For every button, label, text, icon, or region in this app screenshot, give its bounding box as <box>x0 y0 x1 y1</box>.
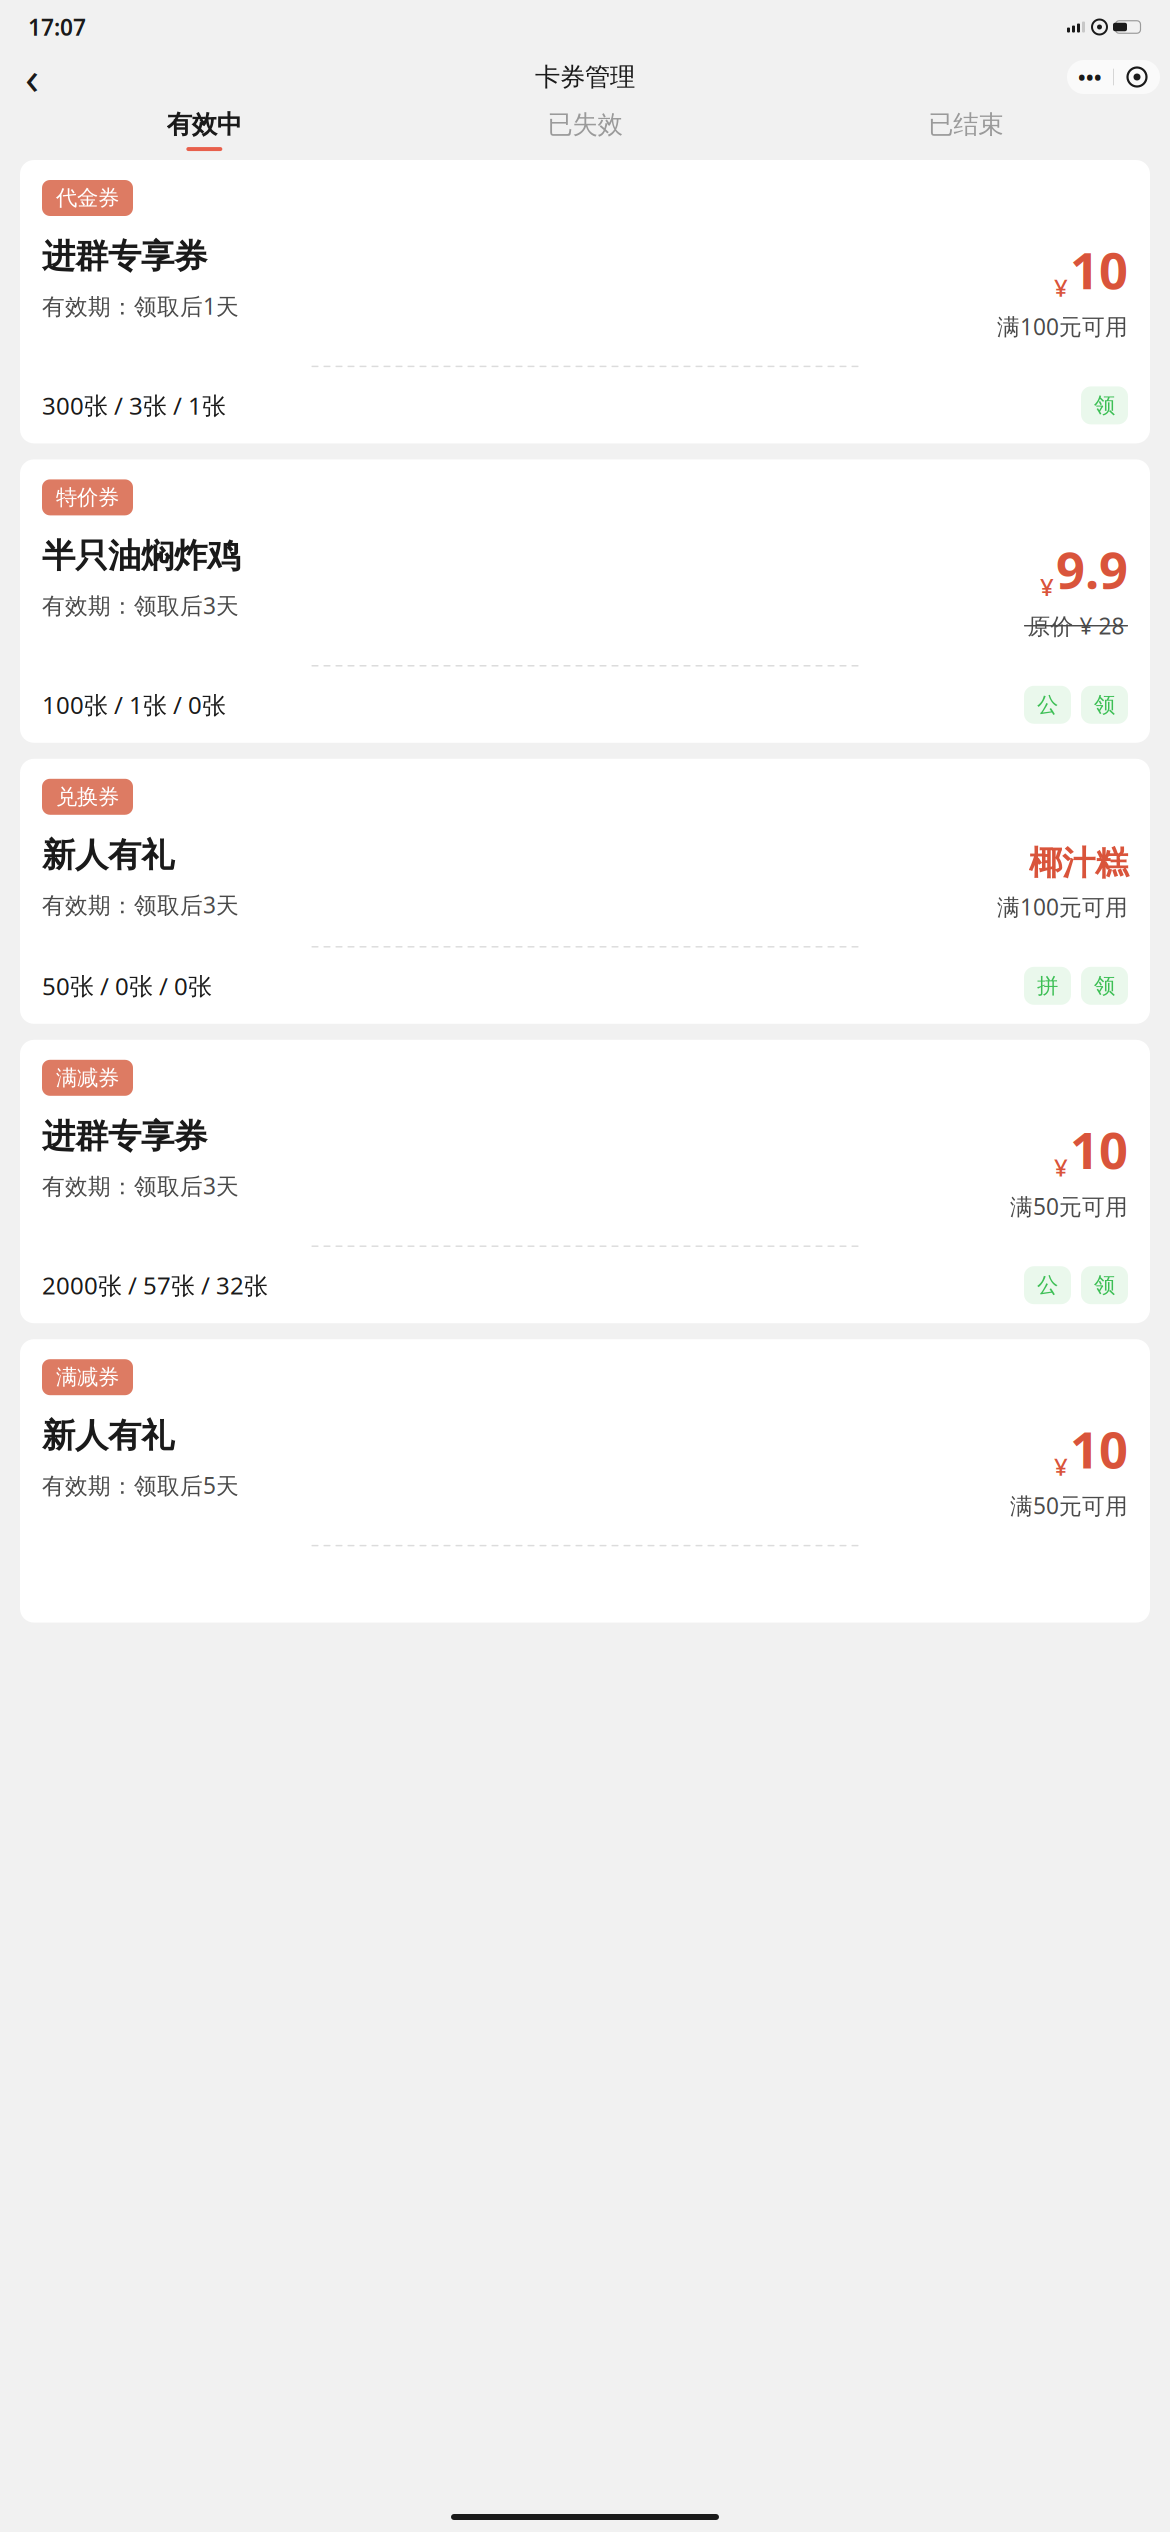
staticText: 领 <box>1094 692 1115 718</box>
staticText: 进群专享券 <box>42 1116 207 1157</box>
staticText: 100张 / 1张 / 0张 <box>42 689 226 721</box>
staticText: 10 <box>1070 1116 1128 1183</box>
staticText: 有效期：领取后5天 <box>42 1470 239 1500</box>
button[interactable]: 有效中 <box>14 109 395 151</box>
staticText: 公 <box>1037 1272 1058 1298</box>
button[interactable]: 满减券 <box>20 1040 1150 1323</box>
staticText: 2000张 / 57张 / 32张 <box>42 1269 268 1301</box>
button[interactable]: 领 <box>1081 686 1128 724</box>
button[interactable]: 拼 <box>1024 967 1071 1005</box>
staticText: 满减券 <box>56 1065 119 1091</box>
staticText: 满50元可用 <box>1010 1490 1128 1521</box>
button[interactable]: 已失效 <box>395 109 775 151</box>
button[interactable]: 特价券 <box>20 459 1150 743</box>
staticText: 10 <box>1070 1415 1128 1482</box>
staticText: 椰汁糕 <box>1029 843 1128 884</box>
staticText: ¥ <box>1054 1151 1068 1183</box>
staticText: 原价 ¥ 28 <box>1027 611 1124 641</box>
staticText: 17:07 <box>28 12 86 42</box>
staticText: 有效期：领取后3天 <box>42 890 239 920</box>
staticText: 公 <box>1037 692 1058 718</box>
staticText: 领 <box>1094 392 1115 418</box>
button[interactable]: 兑换券 <box>20 759 1150 1024</box>
staticText: 有效期：领取后1天 <box>42 291 239 321</box>
staticText: 已失效 <box>547 109 622 140</box>
staticText: 有效期：领取后3天 <box>42 1171 239 1201</box>
staticText: 兑换券 <box>56 784 119 810</box>
staticText: 已结束 <box>928 109 1003 140</box>
button[interactable]: 代金券 <box>20 160 1150 443</box>
staticText: 进群专享券 <box>42 236 207 277</box>
button[interactable]: 满减券 <box>20 1339 1150 1623</box>
staticText: 满100元可用 <box>997 892 1128 922</box>
staticText: ¥ <box>1054 1451 1068 1482</box>
staticText: 拼 <box>1037 973 1058 999</box>
staticText: 9.9 <box>1056 535 1128 603</box>
staticText: 新人有礼 <box>42 1415 174 1456</box>
button[interactable]: 公 <box>1024 686 1071 724</box>
staticText: 新人有礼 <box>42 835 174 876</box>
staticText: 满减券 <box>56 1364 119 1390</box>
staticText: 有效中 <box>167 109 242 140</box>
button[interactable]: Menu <box>1067 60 1160 94</box>
button[interactable]: 领 <box>1081 967 1128 1005</box>
staticText: 卡券管理 <box>535 61 635 92</box>
staticText: 有效期：领取后3天 <box>42 590 239 620</box>
staticText: ••• <box>1078 64 1102 90</box>
button[interactable]: 公 <box>1024 1266 1071 1304</box>
staticText: 半只油焖炸鸡 <box>42 535 240 576</box>
staticText: 领 <box>1094 1272 1115 1298</box>
staticText: 50张 / 0张 / 0张 <box>42 970 212 1002</box>
staticText: 满50元可用 <box>1010 1191 1128 1221</box>
staticText: 特价券 <box>56 484 119 510</box>
staticText: 300张 / 3张 / 1张 <box>42 389 226 421</box>
button[interactable]: 已结束 <box>775 109 1156 151</box>
staticText: 代金券 <box>56 185 119 211</box>
button[interactable]: Back <box>10 55 54 99</box>
button[interactable]: 领 <box>1081 386 1128 424</box>
staticText: ‹ <box>25 47 39 107</box>
staticText: 领 <box>1094 973 1115 999</box>
staticText: 满100元可用 <box>997 311 1128 341</box>
staticText: ¥ <box>1040 571 1054 603</box>
button[interactable]: 领 <box>1081 1266 1128 1304</box>
staticText: 10 <box>1070 236 1128 303</box>
staticText: ¥ <box>1054 271 1068 303</box>
